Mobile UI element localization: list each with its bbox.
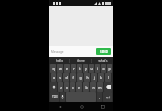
button[interactable]: r	[71, 64, 76, 73]
staticText: z	[60, 85, 62, 90]
button[interactable]: hello	[49, 57, 69, 64]
staticText: r	[73, 66, 75, 71]
staticText: a	[53, 75, 55, 80]
button[interactable]: m	[97, 82, 103, 92]
staticText: m	[98, 85, 102, 90]
staticText: l	[108, 75, 109, 80]
staticText: y	[85, 66, 87, 71]
staticText: ?123	[52, 95, 58, 99]
button[interactable]: p	[107, 64, 112, 73]
button[interactable]: i	[95, 64, 100, 73]
button[interactable]: n	[90, 82, 96, 92]
button[interactable]: h	[84, 73, 90, 82]
staticText: p	[108, 66, 111, 71]
staticText: x	[66, 85, 68, 90]
button[interactable]: Backspace	[104, 82, 112, 92]
staticText: j	[94, 75, 95, 80]
staticText: i	[97, 66, 98, 71]
staticText: what's	[98, 59, 108, 63]
button[interactable]: o	[101, 64, 106, 73]
staticText: hello	[56, 59, 63, 63]
button[interactable]: t	[77, 64, 82, 73]
button[interactable]: g	[77, 73, 83, 82]
button[interactable]: q	[50, 64, 56, 73]
button[interactable]: Voice input	[60, 92, 65, 102]
button[interactable]: c	[70, 82, 75, 92]
button[interactable]: f	[70, 73, 76, 82]
staticText: .	[99, 95, 100, 100]
staticText: u	[90, 66, 93, 71]
button[interactable]: z	[58, 82, 63, 92]
button[interactable]: Enter	[103, 92, 112, 102]
button[interactable]: y	[83, 64, 88, 73]
staticText: h	[86, 75, 89, 80]
button[interactable]: Message	[51, 46, 94, 57]
staticText: k	[100, 75, 102, 80]
staticText: o	[102, 66, 105, 71]
staticText: w	[59, 66, 62, 71]
button[interactable]: x	[64, 82, 69, 92]
button[interactable]: Shift	[50, 82, 57, 92]
button[interactable]: l	[105, 73, 111, 82]
button[interactable]: there	[70, 57, 91, 64]
staticText: v	[78, 85, 80, 90]
staticText: t	[79, 66, 81, 71]
button[interactable]: a	[51, 73, 56, 82]
button[interactable]: Recent apps	[92, 102, 113, 111]
button[interactable]: s	[57, 73, 62, 82]
button[interactable]: u	[89, 64, 94, 73]
staticText: q	[52, 66, 55, 71]
staticText: c	[72, 85, 74, 90]
button[interactable]: w	[57, 64, 63, 73]
staticText: n	[92, 85, 95, 90]
button[interactable]: j	[91, 73, 97, 82]
staticText: b	[85, 85, 88, 90]
staticText: f	[72, 75, 74, 80]
button[interactable]: d	[63, 73, 69, 82]
button[interactable]: .	[97, 92, 102, 102]
button[interactable]: Back	[49, 102, 71, 111]
staticText: s	[59, 75, 61, 80]
staticText: d	[65, 75, 68, 80]
staticText: e	[66, 66, 68, 71]
button[interactable]: ?123	[50, 92, 59, 102]
button[interactable]: b	[83, 82, 89, 92]
button[interactable]: k	[98, 73, 104, 82]
staticText: g	[79, 75, 82, 80]
button[interactable]: Home	[71, 102, 92, 111]
button[interactable]: v	[76, 82, 82, 92]
button[interactable]: what's	[92, 57, 113, 64]
button[interactable]: SEND	[96, 48, 111, 55]
staticText: SEND	[100, 50, 108, 54]
staticText: Message	[51, 50, 64, 54]
staticText: there	[77, 59, 85, 63]
button[interactable]: e	[64, 64, 70, 73]
